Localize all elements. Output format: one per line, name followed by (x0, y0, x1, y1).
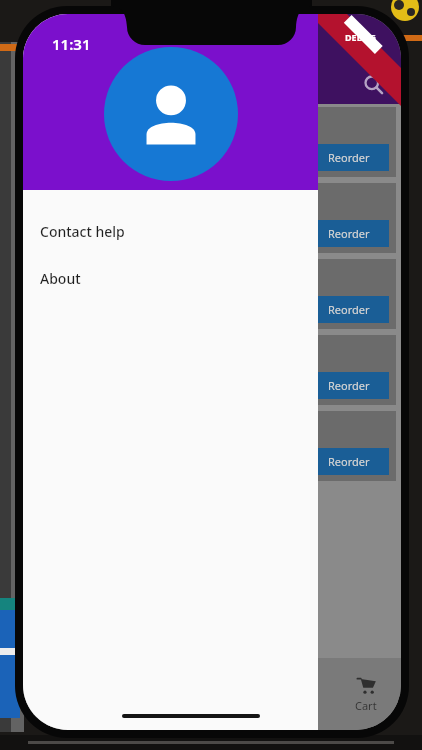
button[interactable]: Cart (355, 676, 377, 713)
staticText: 11:31 (52, 34, 91, 54)
button[interactable]: About (23, 267, 318, 289)
button[interactable]: Biryani (28, 411, 396, 481)
button[interactable]: Contact help (23, 220, 318, 242)
button[interactable]: Reorder (309, 372, 389, 399)
staticText: Reorder (328, 150, 370, 165)
button[interactable]: Biryani (28, 335, 396, 405)
button[interactable]: Biryani (28, 107, 396, 177)
staticText: Biryani (42, 264, 85, 282)
staticText: Cart (355, 698, 377, 713)
button[interactable]: Search (355, 66, 391, 102)
staticText: Reorder (328, 226, 370, 241)
button[interactable]: Biryani (28, 259, 396, 329)
button[interactable]: Profile (104, 47, 238, 181)
button[interactable]: Reorder (309, 144, 389, 171)
staticText: About (40, 269, 81, 288)
button[interactable]: Reorder (309, 448, 389, 475)
staticText: Reorder (328, 454, 370, 469)
staticText: Contact help (40, 222, 125, 241)
staticText: Biryani (42, 188, 85, 206)
button[interactable]: Reorder (309, 220, 389, 247)
staticText: Reorder (328, 302, 370, 317)
staticText: DEBUG (345, 31, 376, 43)
button[interactable]: Biryani (28, 183, 396, 253)
button[interactable]: Reorder (309, 296, 389, 323)
staticText: Reorder (328, 378, 370, 393)
